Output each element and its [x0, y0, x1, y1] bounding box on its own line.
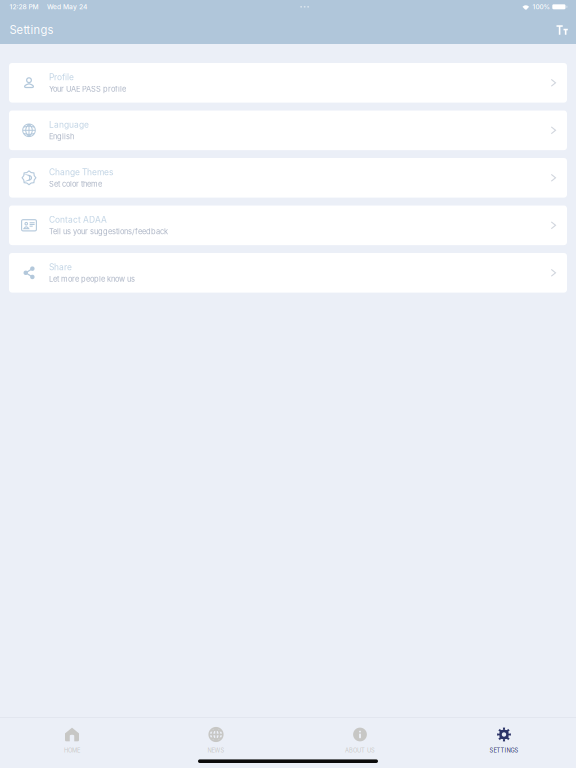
staticText: Profile: [49, 72, 74, 82]
staticText: Language: [49, 119, 89, 130]
button[interactable]: Contact ADAA: [9, 205, 567, 245]
staticText: Tell us your suggestions/feedback: [49, 227, 168, 236]
staticText: Let more people know us: [49, 275, 135, 284]
staticText: SETTINGS: [489, 747, 518, 754]
staticText: ABOUT US: [345, 747, 375, 754]
button[interactable]: Share: [9, 253, 567, 293]
staticText: Settings: [9, 23, 53, 37]
button[interactable]: Change Themes: [9, 158, 567, 198]
button[interactable]: Language: [9, 110, 567, 150]
button[interactable]: HOME: [0, 717, 144, 758]
button[interactable]: Profile: [9, 63, 567, 103]
staticText: NEWS: [207, 747, 224, 754]
button[interactable]: ABOUT US: [288, 717, 432, 758]
staticText: Change Themes: [49, 167, 113, 177]
staticText: English: [49, 132, 74, 141]
button[interactable]: NEWS: [144, 717, 288, 758]
staticText: HOME: [64, 747, 80, 754]
button[interactable]: SETTINGS: [432, 717, 576, 758]
staticText: 100%: [532, 3, 549, 11]
staticText: 12:28 PM: [9, 3, 38, 11]
staticText: Set color theme: [49, 180, 102, 189]
staticText: Wed May 24: [47, 3, 87, 11]
staticText: Your UAE PASS profile: [49, 85, 126, 94]
button[interactable]: Text size: [549, 18, 575, 42]
staticText: Contact ADAA: [49, 214, 107, 225]
staticText: Share: [49, 262, 72, 272]
